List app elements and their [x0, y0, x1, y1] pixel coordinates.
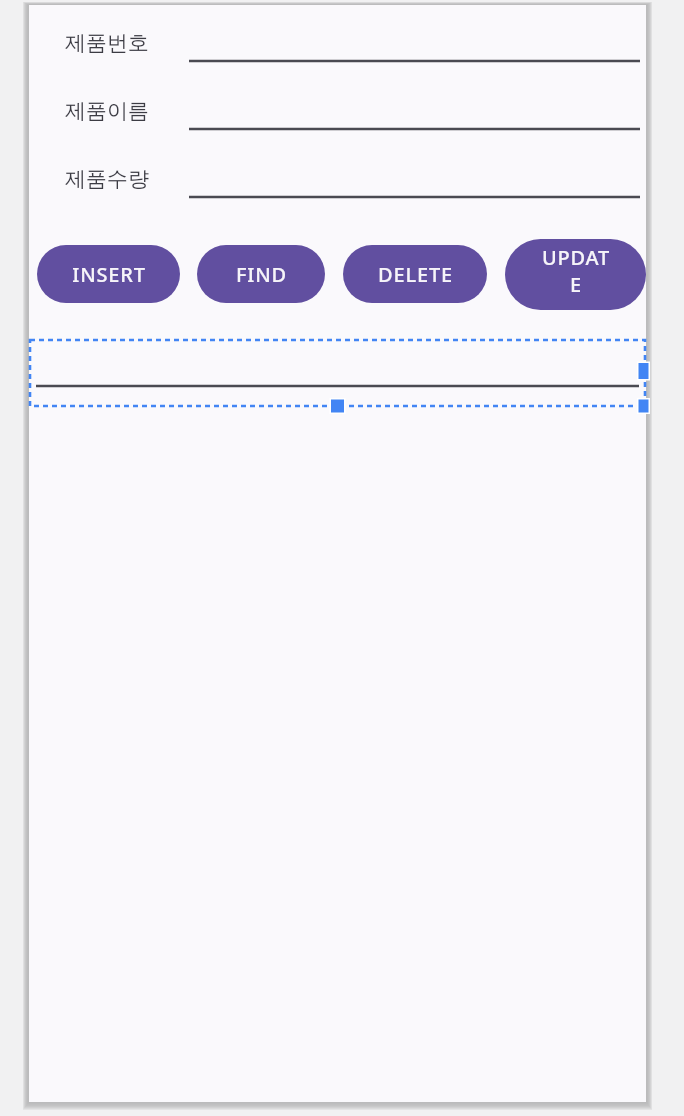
staticText: 제품이름	[65, 98, 149, 124]
staticText: INSERT	[72, 261, 146, 288]
staticText: UPDATE	[537, 244, 615, 306]
button[interactable]: 제품번호 입력	[189, 32, 640, 62]
button[interactable]: FIND	[197, 245, 325, 303]
staticText: 제품수량	[65, 166, 149, 192]
button[interactable]: DELETE	[343, 245, 487, 303]
staticText: 제품번호	[65, 30, 149, 56]
button[interactable]: UPDATE	[505, 239, 646, 310]
staticText: FIND	[236, 261, 287, 288]
button[interactable]: 결과 입력란	[36, 345, 640, 390]
button[interactable]: 제품수량 입력	[189, 168, 640, 198]
button[interactable]: 제품이름 입력	[189, 100, 640, 130]
button[interactable]: INSERT	[37, 245, 180, 303]
staticText: DELETE	[378, 261, 453, 288]
